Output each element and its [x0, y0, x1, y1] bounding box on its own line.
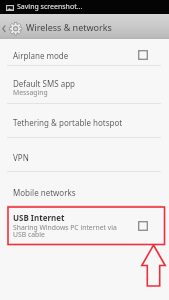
staticText: Wireless & networks: [26, 21, 112, 33]
staticText: Tethering & portable hotspot: [13, 117, 123, 128]
staticText: USB Internet: [13, 212, 65, 223]
staticText: Sharing Windows PC internet via USB cabl…: [13, 223, 117, 239]
button[interactable]: VPN: [0, 138, 169, 172]
staticText: Saving screenshot...: [17, 2, 83, 12]
button[interactable]: Default SMS app: [0, 66, 169, 104]
staticText: Mobile networks: [13, 187, 76, 198]
button[interactable]: USB Internet: [0, 206, 169, 248]
button[interactable]: Tethering & portable hotspot: [0, 104, 169, 138]
button[interactable]: Navigate up to Settings: [1, 17, 23, 37]
button[interactable]: Airplane mode: [0, 39, 169, 66]
staticText: VPN: [13, 152, 29, 163]
staticText: Default SMS app: [13, 78, 76, 89]
staticText: Messaging: [13, 88, 133, 97]
button[interactable]: Mobile networks: [0, 172, 169, 206]
staticText: Airplane mode: [13, 50, 69, 61]
